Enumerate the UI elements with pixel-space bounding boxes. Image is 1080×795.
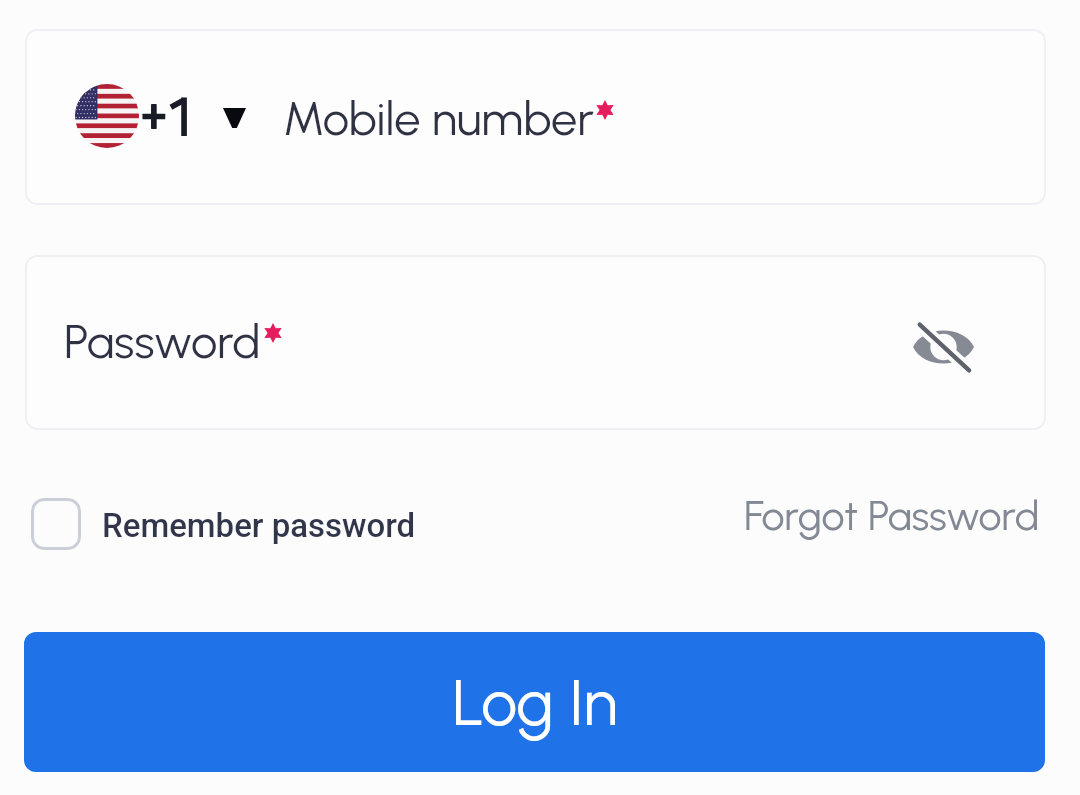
button[interactable]: Password [25,255,1046,430]
button[interactable]: Forgot Password [744,485,1040,545]
staticText: Mobile number [283,90,594,146]
button[interactable]: Log In [24,632,1045,772]
button[interactable]: Remember password [31,498,416,550]
staticText: Log In [452,664,618,741]
staticText: Forgot Password [744,491,1040,540]
button[interactable]: Mobile number [25,29,1046,205]
button[interactable]: Show password [893,302,993,392]
staticText: Password [64,313,261,369]
staticText: Remember password [102,506,416,545]
